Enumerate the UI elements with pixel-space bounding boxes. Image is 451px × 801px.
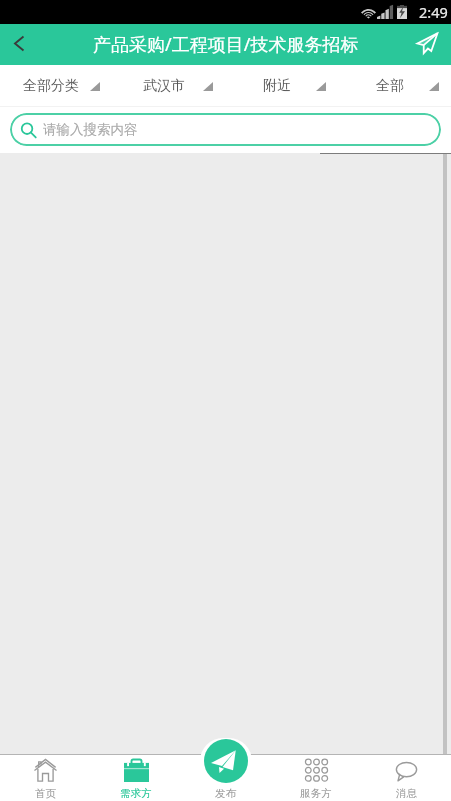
button[interactable]: 服务方 bbox=[271, 755, 361, 801]
button[interactable]: 发布 bbox=[204, 739, 248, 783]
staticText: 需求方 bbox=[120, 787, 152, 800]
button[interactable]: Back bbox=[0, 24, 38, 65]
staticText: 附近 bbox=[263, 77, 291, 95]
button[interactable]: 全部分类 bbox=[0, 65, 112, 106]
staticText: 产品采购/工程项目/技术服务招标 bbox=[93, 32, 359, 57]
staticText: 全部 bbox=[376, 77, 404, 95]
staticText: 发布 bbox=[215, 787, 236, 800]
staticText: 请输入搜索内容 bbox=[43, 121, 138, 138]
staticText: 首页 bbox=[35, 787, 56, 800]
staticText: 服务方 bbox=[300, 787, 332, 800]
button[interactable]: Send bbox=[407, 24, 451, 65]
button[interactable]: 消息 bbox=[361, 755, 451, 801]
staticText: 消息 bbox=[396, 787, 417, 800]
button[interactable]: 需求方 bbox=[91, 755, 181, 801]
button[interactable]: 附近 bbox=[225, 65, 338, 106]
button[interactable]: 全部 bbox=[338, 65, 451, 106]
staticText: 全部分类 bbox=[23, 77, 79, 95]
button[interactable]: 首页 bbox=[0, 755, 91, 801]
button[interactable]: 武汉市 bbox=[112, 65, 225, 106]
button[interactable]: 请输入搜索内容 bbox=[10, 113, 441, 146]
staticText: 武汉市 bbox=[143, 77, 185, 95]
staticText: 2:49 bbox=[419, 2, 448, 22]
